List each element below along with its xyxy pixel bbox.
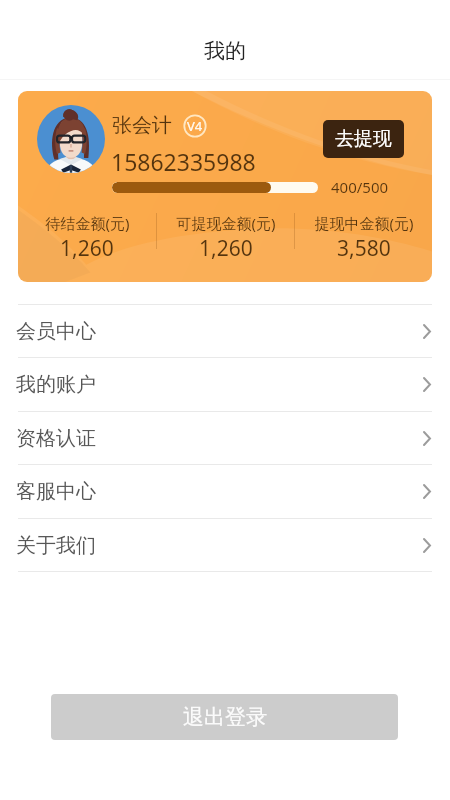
button[interactable]: 我的账户 [0, 358, 450, 410]
staticText: 资格认证 [16, 426, 96, 451]
staticText: 关于我们 [16, 533, 96, 558]
button[interactable]: 退出登录 [51, 694, 398, 740]
staticText: 1,260 [60, 234, 114, 263]
staticText: 400/500 [331, 177, 389, 197]
button[interactable]: 去提现 [323, 120, 404, 158]
staticText: 3,580 [337, 234, 391, 263]
button[interactable]: 资格认证 [0, 412, 450, 464]
staticText: 去提现 [335, 127, 392, 151]
staticText: 1,260 [199, 234, 253, 263]
staticText: V4 [187, 117, 203, 135]
staticText: 退出登录 [183, 704, 267, 730]
staticText: 待结金额(元) [45, 213, 130, 233]
staticText: 会员中心 [16, 319, 96, 344]
button[interactable]: 客服中心 [0, 465, 450, 517]
staticText: 15862335988 [111, 146, 256, 177]
staticText: 我的账户 [16, 372, 96, 397]
button[interactable]: 会员中心 [0, 305, 450, 357]
staticText: 可提现金额(元) [176, 213, 276, 233]
staticText: 客服中心 [16, 479, 96, 504]
button[interactable]: 关于我们 [0, 519, 450, 571]
staticText: 张会计 [112, 113, 172, 138]
staticText: 我的 [204, 38, 246, 64]
staticText: 提现中金额(元) [314, 213, 414, 233]
